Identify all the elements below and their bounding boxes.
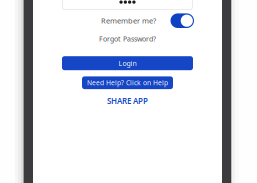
staticText: Remember me?: [101, 16, 156, 26]
staticText: Login: [118, 58, 136, 68]
button[interactable]: Need Help? Click on Help: [82, 76, 173, 89]
button[interactable]: Forgot Password?: [99, 35, 156, 43]
staticText: Need Help? Click on Help: [87, 78, 168, 87]
staticText: SHARE APP: [107, 95, 148, 106]
staticText: Forgot Password?: [99, 34, 156, 43]
button[interactable]: SHARE APP: [107, 97, 148, 104]
button[interactable]: Login: [62, 56, 193, 70]
